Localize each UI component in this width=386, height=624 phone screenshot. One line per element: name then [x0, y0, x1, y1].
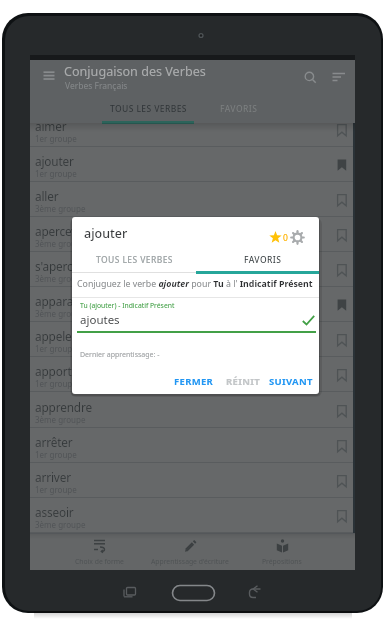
staticText: 3ème groupe: [35, 238, 86, 249]
staticText: aimer: [35, 118, 67, 134]
staticText: appeler: [35, 328, 77, 344]
button[interactable]: appeler: [30, 322, 355, 357]
staticText: FAVORIS: [220, 103, 258, 115]
button[interactable]: [269, 231, 282, 244]
staticText: FERMER: [174, 375, 214, 388]
staticText: 1er groupe: [35, 168, 77, 179]
button[interactable]: aller: [30, 182, 355, 217]
button[interactable]: [304, 71, 317, 84]
button[interactable]: [337, 475, 347, 488]
staticText: s'apercevoir: [35, 258, 100, 274]
button[interactable]: [337, 369, 347, 382]
staticText: RÉINIT: [226, 375, 260, 388]
button[interactable]: s'apercevoir: [30, 252, 355, 287]
staticText: TOUS LES VERBES: [110, 103, 187, 115]
button[interactable]: apporter: [30, 357, 355, 392]
button[interactable]: TOUS LES VERBES: [72, 247, 196, 272]
button[interactable]: arrêter: [30, 428, 355, 463]
staticText: aller: [35, 188, 59, 204]
staticText: ajouter: [84, 225, 128, 242]
staticText: Conjugaison des Verbes: [64, 63, 206, 80]
button[interactable]: SUIVANT: [265, 370, 317, 392]
staticText: Apprentissage d'écriture: [151, 557, 229, 566]
button[interactable]: Apprentissage d'écriture: [144, 537, 236, 568]
button[interactable]: Prépositions: [236, 537, 328, 568]
button[interactable]: [291, 231, 304, 244]
button[interactable]: [337, 229, 347, 242]
button[interactable]: [337, 510, 347, 523]
staticText: Conjuguez le verbe ajouter pour Tu à l' …: [77, 278, 313, 290]
staticText: 3ème groupe: [35, 519, 86, 530]
staticText: apprendre: [35, 399, 92, 415]
staticText: apporter: [35, 363, 83, 379]
staticText: ajouter: [35, 153, 74, 169]
staticText: 3ème groupe: [35, 414, 86, 425]
button[interactable]: FAVORIS: [193, 95, 285, 123]
button[interactable]: asseoir: [30, 498, 355, 533]
button[interactable]: aimer: [30, 112, 355, 147]
staticText: 3ème groupe: [35, 203, 86, 214]
staticText: TOUS LES VERBES: [96, 254, 173, 266]
staticText: Tu (ajouter) - Indicatif Présent: [80, 301, 175, 310]
button[interactable]: [337, 124, 347, 137]
staticText: FAVORIS: [244, 254, 282, 266]
button[interactable]: ajouter: [30, 147, 355, 182]
staticText: arrêter: [35, 434, 73, 450]
button[interactable]: FERMER: [170, 370, 218, 392]
staticText: Dernier apprentissage: -: [80, 350, 160, 360]
staticText: 0: [283, 232, 288, 244]
button[interactable]: arriver: [30, 463, 355, 498]
button[interactable]: TOUS LES VERBES: [102, 95, 194, 123]
staticText: SUIVANT: [269, 375, 313, 388]
button[interactable]: apercevoir: [30, 217, 355, 252]
button[interactable]: apprendre: [30, 393, 355, 428]
staticText: apparaître: [35, 293, 92, 309]
staticText: 3ème groupe: [35, 308, 86, 319]
button[interactable]: [337, 405, 347, 418]
button[interactable]: [337, 299, 347, 312]
staticText: 1er groupe: [35, 343, 77, 354]
staticText: ajoutes: [80, 312, 120, 328]
staticText: Prépositions: [262, 557, 302, 566]
button[interactable]: [332, 72, 346, 83]
button[interactable]: [337, 159, 347, 172]
staticText: Verbes Français: [65, 80, 128, 92]
staticText: 1er groupe: [35, 378, 77, 389]
staticText: 1er groupe: [35, 133, 77, 144]
button[interactable]: [337, 440, 347, 453]
button[interactable]: [337, 194, 347, 207]
button[interactable]: [337, 264, 347, 277]
staticText: 1er groupe: [35, 484, 77, 495]
button[interactable]: RÉINIT: [222, 370, 264, 392]
staticText: Choix de forme: [75, 557, 124, 566]
button[interactable]: [337, 334, 347, 347]
staticText: 3ème groupe: [35, 273, 86, 284]
staticText: asseoir: [35, 504, 74, 520]
button[interactable]: apparaître: [30, 287, 355, 322]
button[interactable]: Choix de forme: [53, 537, 145, 568]
button[interactable]: FAVORIS: [196, 247, 319, 272]
button[interactable]: [77, 308, 316, 333]
button[interactable]: [43, 71, 57, 83]
staticText: apercevoir: [35, 223, 92, 239]
staticText: arriver: [35, 469, 71, 485]
staticText: 1er groupe: [35, 449, 77, 460]
